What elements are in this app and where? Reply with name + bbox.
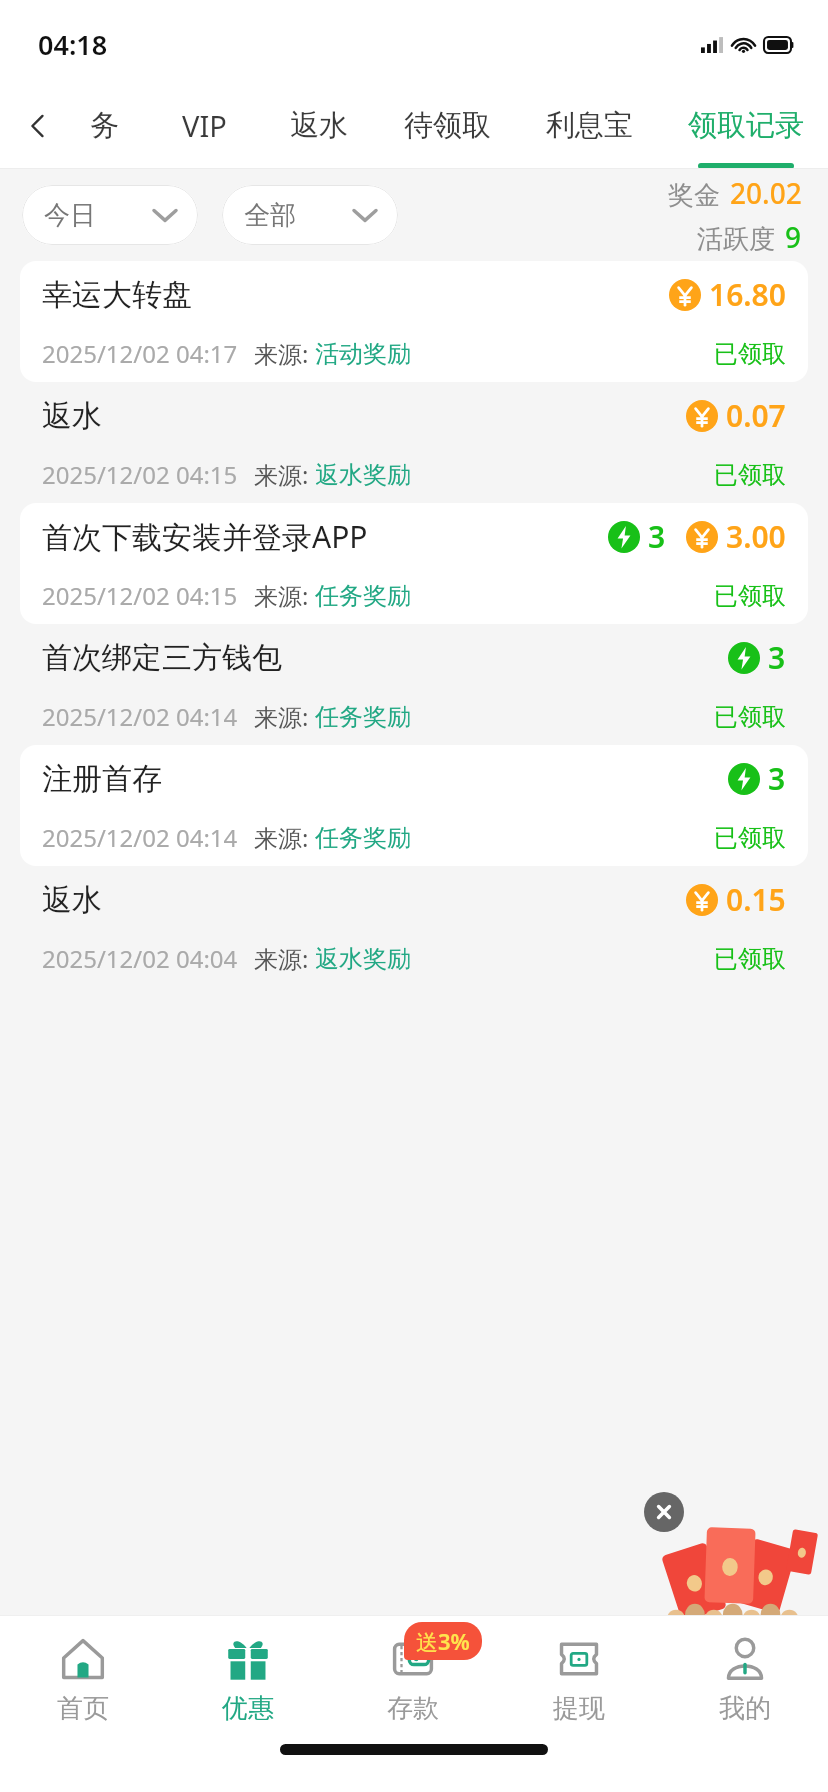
staticText: 已领取 xyxy=(714,702,786,732)
staticText: 2025/12/02 04:14 xyxy=(42,821,238,854)
staticText: 首次绑定三方钱包 xyxy=(42,639,282,677)
button[interactable]: 返水 xyxy=(20,866,808,987)
staticText: VIP xyxy=(182,106,227,145)
staticText: 活跃度 xyxy=(697,223,775,256)
staticText: 来源: xyxy=(254,942,309,975)
button[interactable]: 返水 xyxy=(20,382,808,503)
button[interactable]: 利息宝 xyxy=(515,82,664,169)
button[interactable]: Back xyxy=(10,98,66,154)
button[interactable]: 首次绑定三方钱包 xyxy=(20,624,808,745)
staticText: 务 xyxy=(90,107,119,144)
staticText: 16.80 xyxy=(709,274,786,315)
staticText: 来源: xyxy=(254,700,309,733)
staticText: 送3% xyxy=(416,1626,470,1656)
staticText: 2025/12/02 04:15 xyxy=(42,579,238,612)
staticText: 任务奖励 xyxy=(315,823,411,853)
staticText: 提现 xyxy=(553,1692,605,1725)
staticText: 存款 xyxy=(387,1692,439,1725)
staticText: 07:41:29 xyxy=(708,1607,812,1642)
staticText: 活动奖励 xyxy=(315,339,411,369)
staticText: 2025/12/02 04:04 xyxy=(42,942,238,975)
staticText: 已领取 xyxy=(714,339,786,369)
staticText: 返水奖励 xyxy=(315,460,411,490)
staticText: 返水 xyxy=(290,107,348,144)
button[interactable]: 领取记录 xyxy=(664,82,828,169)
staticText: 已领取 xyxy=(714,581,786,611)
button[interactable]: 首页 xyxy=(0,1616,165,1744)
staticText: 2025/12/02 04:14 xyxy=(42,700,238,733)
staticText: 我的 xyxy=(719,1692,771,1725)
button[interactable]: 今日 xyxy=(22,185,198,245)
staticText: 幸运大转盘 xyxy=(42,276,192,314)
staticText: 奖金 xyxy=(668,179,720,212)
staticText: 已领取 xyxy=(714,823,786,853)
staticText: 0.07 xyxy=(726,395,786,436)
staticText: 返水 xyxy=(42,397,102,435)
button[interactable]: 首次下载安装并登录APP xyxy=(20,503,808,624)
staticText: 3 xyxy=(768,637,786,678)
staticText: 注册首存 xyxy=(42,760,162,798)
button[interactable]: 全部 xyxy=(222,185,398,245)
staticText: 任务奖励 xyxy=(315,702,411,732)
button[interactable]: Close xyxy=(644,1492,684,1532)
staticText: 3 xyxy=(648,516,666,557)
staticText: 已领取 xyxy=(714,944,786,974)
button[interactable]: 返水 xyxy=(258,82,380,169)
staticText: 9 xyxy=(785,218,802,256)
staticText: 全部 xyxy=(244,199,296,232)
staticText: 首次下载安装并登录APP xyxy=(42,516,368,557)
staticText: 来源: xyxy=(254,458,309,491)
button[interactable]: 优惠 xyxy=(165,1616,330,1744)
button[interactable]: 我的 xyxy=(662,1616,828,1744)
staticText: 04:18 xyxy=(38,26,108,63)
staticText: 待领取 xyxy=(404,107,491,144)
staticText: 返水 xyxy=(42,881,102,919)
button[interactable]: Promotion xyxy=(640,1492,820,1642)
staticText: 20.02 xyxy=(730,174,802,212)
staticText: 来源: xyxy=(254,579,309,612)
staticText: 已领取 xyxy=(714,460,786,490)
staticText: 0.15 xyxy=(726,879,786,920)
staticText: 今日 xyxy=(44,199,96,232)
staticText: 3.00 xyxy=(726,516,786,557)
button[interactable]: 提现 xyxy=(496,1616,662,1744)
button[interactable]: 待领取 xyxy=(380,82,515,169)
button[interactable]: 幸运大转盘 xyxy=(20,261,808,382)
staticText: 首页 xyxy=(57,1692,109,1725)
button[interactable]: 注册首存 xyxy=(20,745,808,866)
staticText: 返水奖励 xyxy=(315,944,411,974)
staticText: 利息宝 xyxy=(546,107,633,144)
staticText: 3 xyxy=(768,758,786,799)
button[interactable]: VIP xyxy=(150,82,258,169)
staticText: 任务奖励 xyxy=(315,581,411,611)
staticText: 领取记录 xyxy=(688,107,804,144)
staticText: 2025/12/02 04:17 xyxy=(42,337,238,370)
staticText: 来源: xyxy=(254,337,309,370)
staticText: 2025/12/02 04:15 xyxy=(42,458,238,491)
button[interactable]: 务 xyxy=(58,82,150,169)
staticText: 优惠 xyxy=(222,1692,274,1725)
button[interactable]: 存款 xyxy=(330,1616,496,1744)
staticText: 来源: xyxy=(254,821,309,854)
